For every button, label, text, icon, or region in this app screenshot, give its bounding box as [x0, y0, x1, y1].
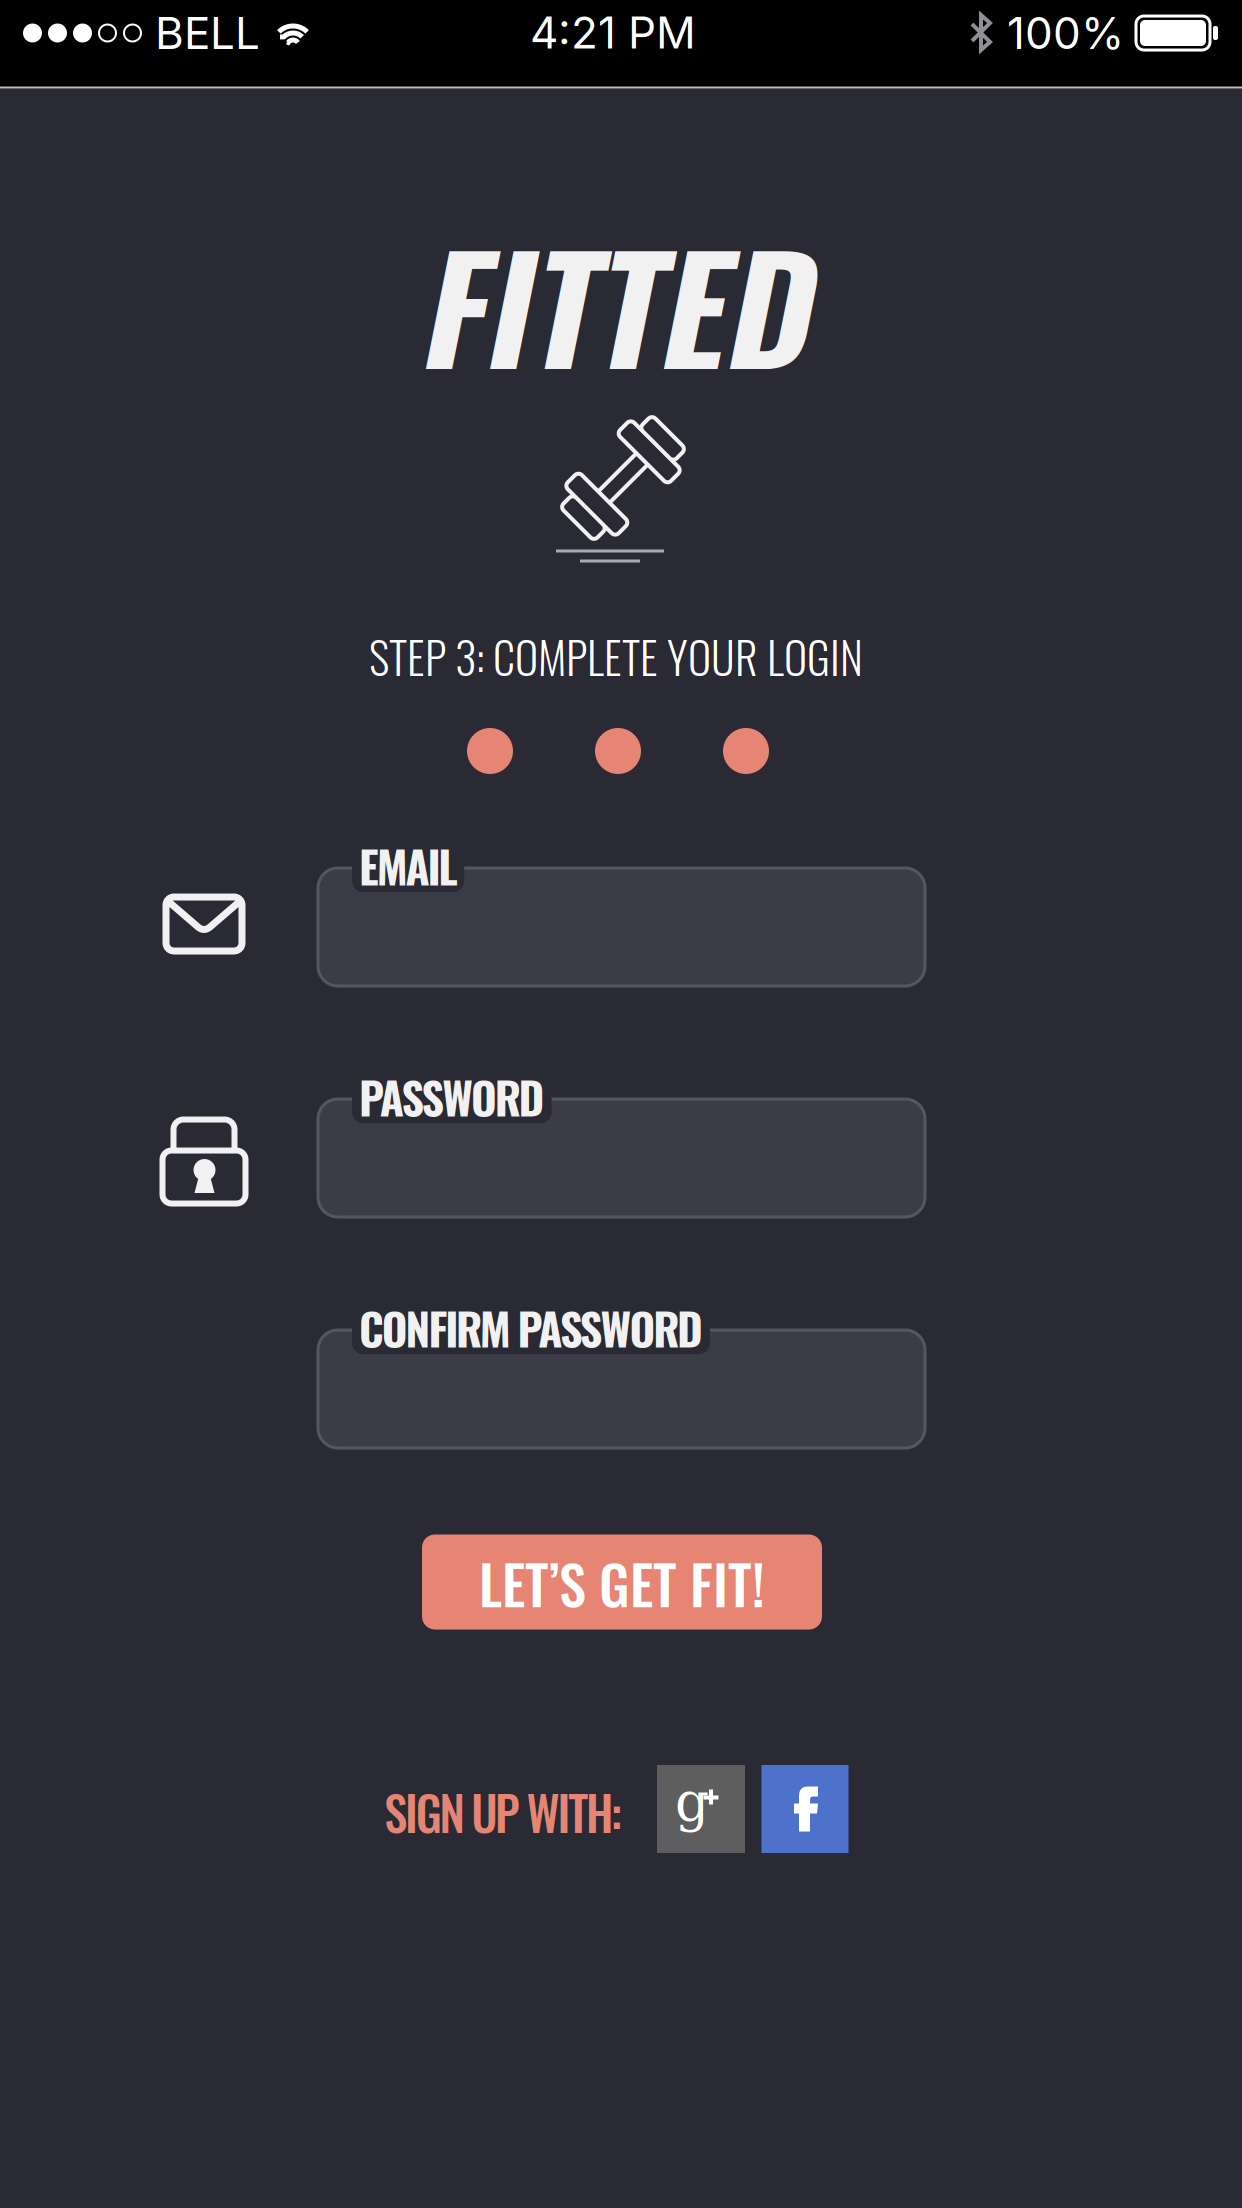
button[interactable]: Sign up with Facebook — [761, 1765, 848, 1853]
staticText: FITTED — [417, 194, 807, 412]
staticText: LET’S GET FIT! — [479, 1542, 765, 1623]
button[interactable]: PASSWORD — [318, 1099, 925, 1217]
button[interactable]: EMAIL — [318, 868, 925, 986]
staticText: 4:21 PM — [530, 6, 696, 59]
staticText: 100% — [1007, 6, 1124, 60]
staticText: CONFIRM PASSWORD — [359, 1295, 703, 1360]
staticText: EMAIL — [359, 833, 457, 898]
staticText: STEP 3: COMPLETE YOUR LOGIN — [369, 623, 863, 689]
button[interactable]: LET’S GET FIT! — [422, 1534, 822, 1629]
staticText: SIGN UP WITH: — [384, 1777, 622, 1847]
button[interactable]: CONFIRM PASSWORD — [318, 1330, 925, 1448]
staticText: PASSWORD — [359, 1064, 545, 1129]
staticText: g — [675, 1771, 709, 1833]
staticText: BELL — [155, 6, 260, 60]
button[interactable]: Sign up with Google — [657, 1765, 745, 1853]
